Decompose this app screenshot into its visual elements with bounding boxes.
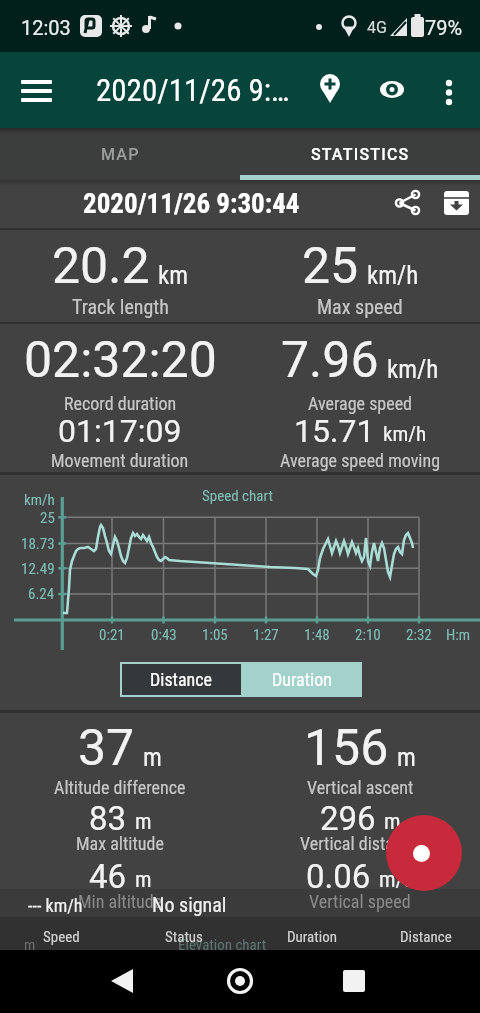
button[interactable] (80, 950, 164, 1013)
staticText: 2:10 (355, 626, 381, 644)
staticText: 25 (40, 509, 55, 527)
button[interactable] (386, 815, 462, 891)
staticText: Distance (150, 669, 213, 690)
staticText: Status (165, 928, 203, 946)
staticText: m (135, 867, 152, 893)
staticText: 02:32:20 (24, 331, 217, 390)
staticText: 83 (89, 799, 127, 838)
staticText: Vertical speed (309, 891, 411, 912)
staticText: 4G (367, 18, 387, 37)
staticText: m (24, 936, 36, 954)
staticText: Record duration (64, 393, 177, 414)
staticText: km/h (387, 355, 439, 384)
staticText: km (158, 261, 189, 290)
button[interactable]: STATISTICS (240, 128, 480, 180)
staticText: 7.96 (281, 331, 379, 390)
staticText: 15.71 (294, 412, 375, 450)
staticText: --- km/h (28, 895, 83, 916)
staticText: Duration (272, 669, 332, 690)
staticText: 1:05 (202, 626, 228, 644)
staticText: Vertical ascent (307, 777, 414, 798)
staticText: No signal (152, 893, 227, 916)
staticText: m (397, 743, 416, 772)
button[interactable]: MAP (0, 128, 240, 180)
button[interactable] (368, 78, 416, 126)
staticText: km/h (24, 491, 55, 509)
staticText: Duration (287, 928, 337, 946)
staticText: Distance (400, 928, 452, 946)
staticText: Altitude difference (54, 777, 186, 798)
staticText: 79% (425, 16, 463, 39)
staticText: m (384, 809, 401, 835)
button[interactable] (434, 180, 480, 228)
staticText: 25 (302, 237, 359, 296)
button[interactable] (425, 78, 473, 126)
staticText: 37 (78, 719, 135, 778)
staticText: m (135, 809, 152, 835)
button[interactable] (384, 180, 432, 228)
staticText: STATISTICS (311, 145, 410, 164)
staticText: H:m (446, 626, 471, 644)
staticText: 1:27 (253, 626, 279, 644)
button[interactable] (198, 950, 282, 1013)
staticText: 6.24 (28, 585, 55, 603)
staticText: Speed chart (202, 487, 273, 505)
button[interactable] (314, 950, 398, 1013)
staticText: km/h (367, 261, 419, 290)
staticText: 1:48 (304, 626, 330, 644)
staticText: 12:03 (21, 16, 71, 39)
staticText: 296 (320, 799, 376, 838)
staticText: Speed (43, 928, 80, 946)
staticText: Movement duration (51, 450, 189, 471)
staticText: Min altitude (78, 891, 163, 912)
button[interactable] (306, 78, 354, 126)
staticText: m (143, 743, 162, 772)
staticText: Elevation chart (178, 936, 267, 954)
staticText: MAP (101, 145, 140, 164)
staticText: 12.49 (21, 560, 55, 578)
staticText: Vertical distance (300, 833, 420, 854)
staticText: 2:32 (406, 626, 432, 644)
staticText: 0:21 (99, 626, 125, 644)
button[interactable] (10, 78, 62, 126)
staticText: km/h (383, 422, 427, 447)
staticText: 2020/11/26 9:30:44 (83, 188, 300, 220)
staticText: Average speed moving (280, 450, 441, 471)
staticText: Track length (72, 295, 169, 318)
button[interactable]: Duration (241, 662, 362, 697)
staticText: m/s (379, 867, 414, 893)
button[interactable]: Distance (122, 664, 241, 695)
staticText: 0:43 (151, 626, 177, 644)
staticText: Max altitude (76, 833, 164, 854)
staticText: Max speed (317, 295, 403, 318)
staticText: Average speed (308, 393, 413, 414)
staticText: 156 (304, 719, 389, 778)
staticText: 18.73 (21, 535, 55, 553)
staticText: 46 (89, 857, 127, 896)
staticText: 01:17:09 (58, 412, 182, 450)
staticText: 20.2 (52, 237, 150, 296)
staticText: 2020/11/26 9:… (96, 72, 290, 108)
staticText: 0.06 (306, 857, 371, 896)
